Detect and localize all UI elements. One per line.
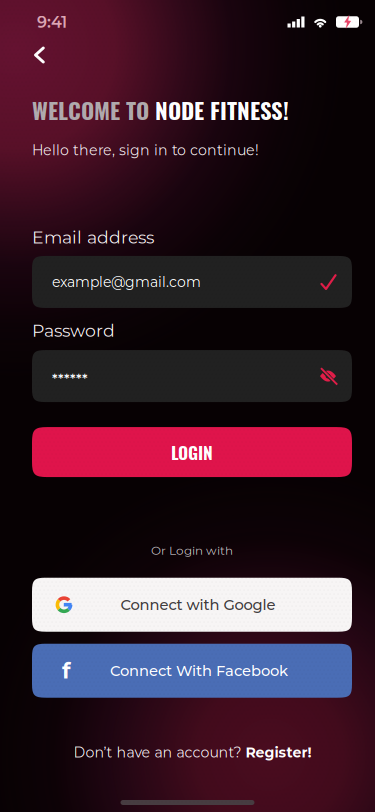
staticText: example@gmail.com <box>52 273 201 290</box>
staticText: Hello there, sign in to continue! <box>32 142 259 159</box>
staticText: Connect With Facebook <box>110 662 288 680</box>
staticText: WELCOME TO <box>32 93 155 127</box>
button[interactable]: Don’t have an account? <box>73 744 311 761</box>
button[interactable] <box>320 370 352 383</box>
button[interactable]: LOGIN <box>32 427 352 477</box>
staticText: Email address <box>32 227 154 248</box>
staticText: Don’t have an account? <box>73 744 245 761</box>
staticText: Password <box>32 320 115 341</box>
staticText: 9:41 <box>37 12 67 32</box>
staticText: Connect with Google <box>120 596 275 614</box>
button[interactable]: Connect With Facebook <box>32 644 352 698</box>
staticText: Register! <box>245 744 311 761</box>
staticText: f <box>62 657 71 684</box>
button[interactable]: Connect with Google <box>32 578 352 632</box>
staticText: NODE FITNESS! <box>155 93 289 127</box>
staticText: ****** <box>52 371 88 387</box>
button[interactable]: example@gmail.com <box>32 256 352 308</box>
button[interactable]: ****** <box>32 350 352 402</box>
staticText: Or Login with <box>151 543 233 558</box>
staticText: LOGIN <box>171 439 213 465</box>
button[interactable] <box>0 44 45 66</box>
